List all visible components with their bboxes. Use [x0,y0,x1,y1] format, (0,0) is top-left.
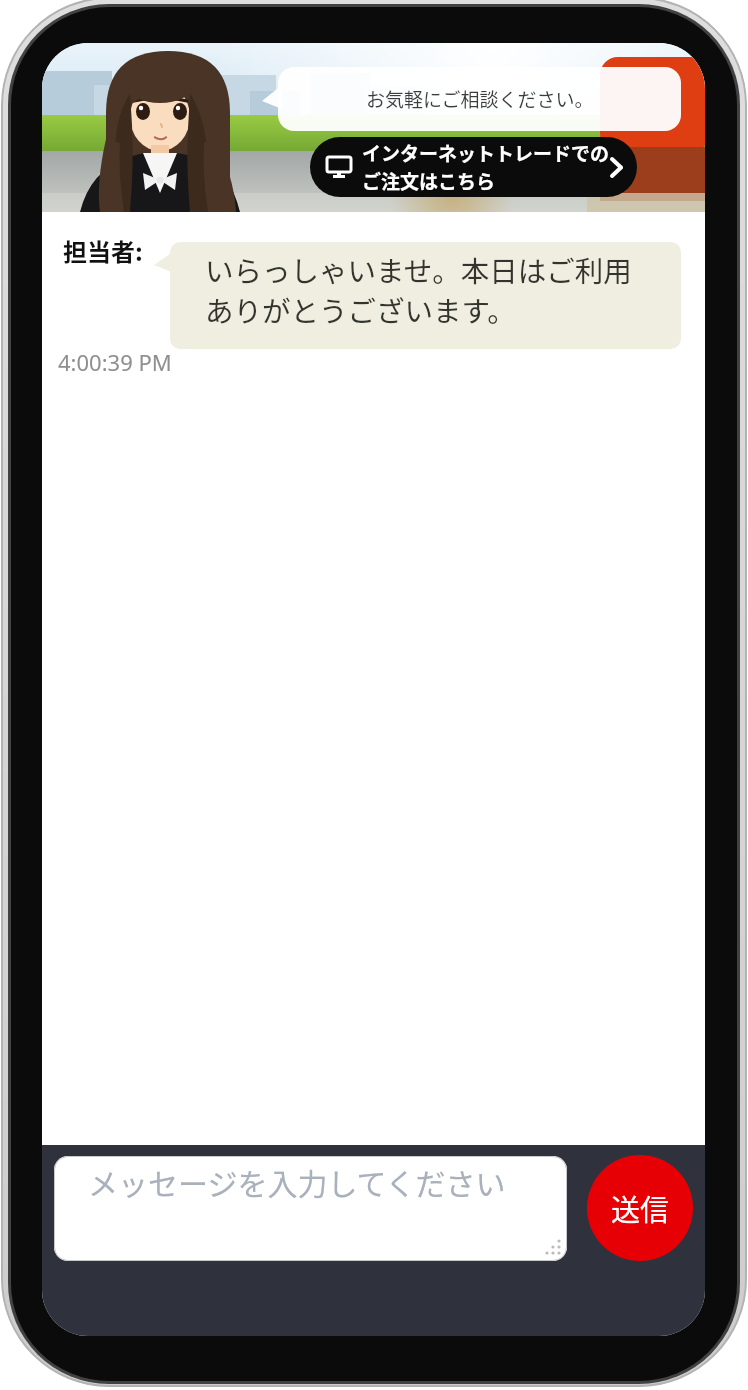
button[interactable]: 送信 [587,1155,693,1261]
staticText: 担当者: [63,233,143,268]
button[interactable]: インターネットトレードでの [310,137,637,197]
staticText: メッセージを入力してください [88,1160,506,1203]
staticText: ご注文はこちら [362,167,496,195]
button[interactable]: メッセージを入力してください [54,1156,567,1261]
staticText: 4:00:39 PM [58,347,172,377]
staticText: お気軽にご相談ください。 [366,85,594,113]
staticText: 送信 [611,1187,670,1229]
staticText: インターネットトレードでの [362,139,610,167]
staticText: いらっしゃいませ。本日はご利用 ありがとうございます。 [205,249,632,330]
